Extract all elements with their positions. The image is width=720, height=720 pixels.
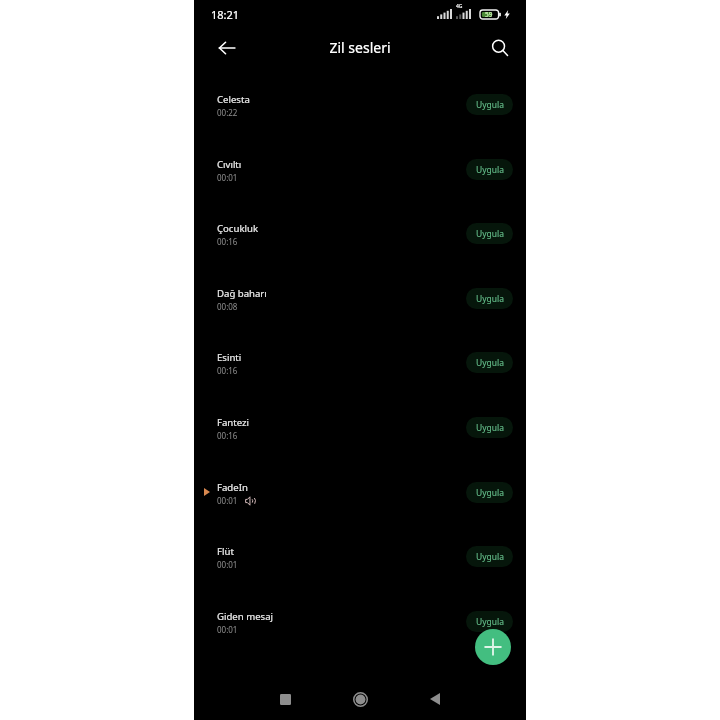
staticText: 4G [456,3,463,10]
staticText: Uygula [476,487,504,499]
staticText: 00:08 [217,301,238,312]
staticText: Uygula [476,616,504,628]
staticText: 00:01 [217,172,238,183]
button[interactable]: Uygula [466,223,513,244]
button[interactable]: Celesta [194,84,526,149]
button[interactable]: Uygula [466,288,513,309]
button[interactable]: FadeIn [194,472,526,537]
button[interactable]: Home [339,678,381,720]
button[interactable]: Uygula [466,611,513,632]
button[interactable]: Uygula [466,482,513,503]
button[interactable]: Uygula [466,94,513,115]
staticText: Fantezi [217,416,250,429]
staticText: FadeIn [217,481,248,494]
button[interactable]: Back [210,31,243,64]
staticText: Uygula [476,422,504,434]
staticText: 00:01 [217,624,238,635]
button[interactable]: Uygula [466,417,513,438]
staticText: Çocukluk [217,222,259,235]
button[interactable]: Add ringtone [475,629,511,665]
staticText: Esinti [217,351,242,364]
staticText: Celesta [217,93,250,106]
button[interactable]: Uygula [466,352,513,373]
staticText: Uygula [476,357,504,369]
button[interactable]: Çocukluk [194,213,526,278]
staticText: 00:16 [217,430,238,441]
button[interactable]: Dağ baharı [194,278,526,343]
button[interactable]: Search [483,31,516,64]
staticText: 00:01 [217,495,238,506]
staticText: Uygula [476,164,504,176]
staticText: Uygula [476,551,504,563]
button[interactable]: Giden mesaj [194,601,526,666]
staticText: 00:16 [217,365,238,376]
staticText: Giden mesaj [217,610,274,623]
button[interactable]: Fantezi [194,407,526,472]
staticText: 00:16 [217,236,238,247]
staticText: Uygula [476,99,504,111]
button[interactable]: Back [414,678,456,720]
staticText: 00:22 [217,107,238,118]
button[interactable]: Uygula [466,159,513,180]
button[interactable]: Cıvıltı [194,149,526,214]
staticText: Zil sesleri [194,38,526,57]
staticText: Dağ baharı [217,287,267,300]
button[interactable]: Uygula [466,546,513,567]
staticText: Uygula [476,293,504,305]
staticText: 18:21 [211,7,240,22]
staticText: 00:01 [217,559,238,570]
staticText: Cıvıltı [217,158,242,171]
button[interactable]: Flüt [194,536,526,601]
button[interactable]: Recents [264,678,306,720]
staticText: 59 [485,10,493,19]
staticText: Flüt [217,545,234,558]
staticText: Uygula [476,228,504,240]
button[interactable]: Esinti [194,342,526,407]
